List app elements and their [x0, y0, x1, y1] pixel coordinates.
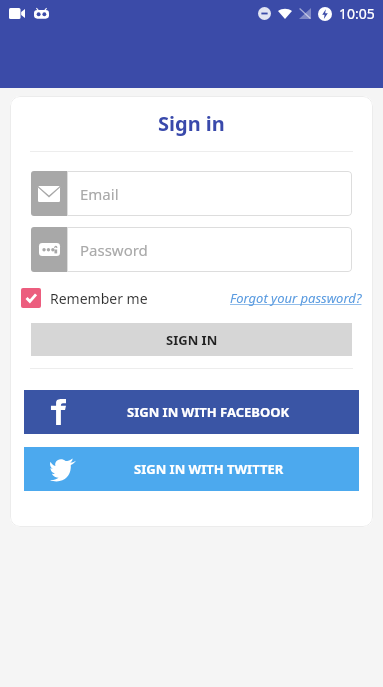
other: Facebook: [50, 399, 66, 425]
staticText: Forgot your password?: [230, 289, 362, 307]
staticText: Sign in: [158, 110, 225, 137]
button[interactable]: SIGN IN: [31, 323, 352, 356]
button[interactable]: Twitter: [24, 447, 359, 491]
staticText: Remember me: [50, 289, 148, 308]
staticText: Password: [80, 240, 148, 260]
button[interactable]: Remember me: [21, 288, 152, 308]
other: Password: [39, 243, 60, 256]
staticText: SIGN IN WITH FACEBOOK: [127, 403, 290, 421]
staticText: SIGN IN: [166, 331, 218, 349]
button[interactable]: Email: [31, 171, 352, 216]
button[interactable]: Forgot your password?: [230, 289, 362, 307]
staticText: 10:05: [339, 4, 375, 23]
button[interactable]: Password: [31, 227, 352, 272]
staticText: SIGN IN WITH TWITTER: [134, 460, 284, 478]
other: Twitter: [50, 458, 76, 480]
button[interactable]: Facebook: [24, 390, 359, 434]
other: Email: [38, 186, 60, 202]
staticText: Email: [80, 184, 119, 204]
